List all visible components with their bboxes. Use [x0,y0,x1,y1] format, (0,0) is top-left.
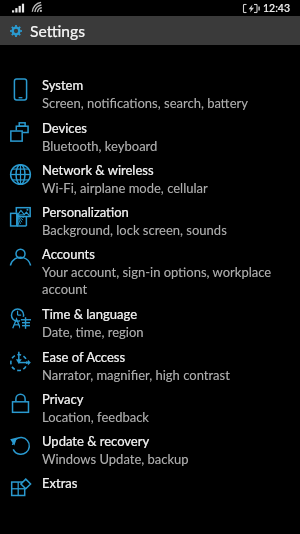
staticText: Ease of Access [42,349,126,365]
staticText: Settings [30,22,85,41]
button[interactable]: Ease of Access [0,346,300,388]
staticText: 12:43 [263,2,290,15]
staticText: Your account, sign-in options, workplace [42,264,272,280]
staticText: Devices [42,120,87,136]
button[interactable]: Update & recovery [0,430,300,472]
staticText: Time & language [42,306,137,322]
staticText: Background, lock screen, sounds [42,222,227,238]
button[interactable]: Personalization [0,201,300,243]
staticText: Extras [42,475,78,491]
staticText: Update & recovery [42,433,150,449]
staticText: Personalization [42,204,129,220]
button[interactable]: Settings [0,16,300,45]
staticText: Bluetooth, keyboard [42,138,158,154]
staticText: Location, feedback [42,409,149,425]
staticText: Screen, notifications, search, battery [42,95,248,111]
staticText: System [42,77,84,93]
button[interactable]: Devices [0,117,300,159]
staticText: Wi-Fi, airplane mode, cellular [42,180,208,196]
staticText: Narrator, magnifier, high contrast [42,367,230,383]
staticText: Accounts [42,246,95,262]
staticText: Windows Update, backup [42,451,189,467]
button[interactable]: System [0,74,300,116]
button[interactable]: Privacy [0,388,300,430]
staticText: account [42,281,88,297]
button[interactable]: Network & wireless [0,159,300,201]
staticText: Network & wireless [42,162,154,178]
other: Settings [10,25,22,37]
staticText: Date, time, region [42,324,144,340]
button[interactable]: Extras [0,472,300,514]
staticText: Privacy [42,391,84,407]
button[interactable]: Accounts [0,243,300,303]
button[interactable]: Time & language [0,303,300,345]
